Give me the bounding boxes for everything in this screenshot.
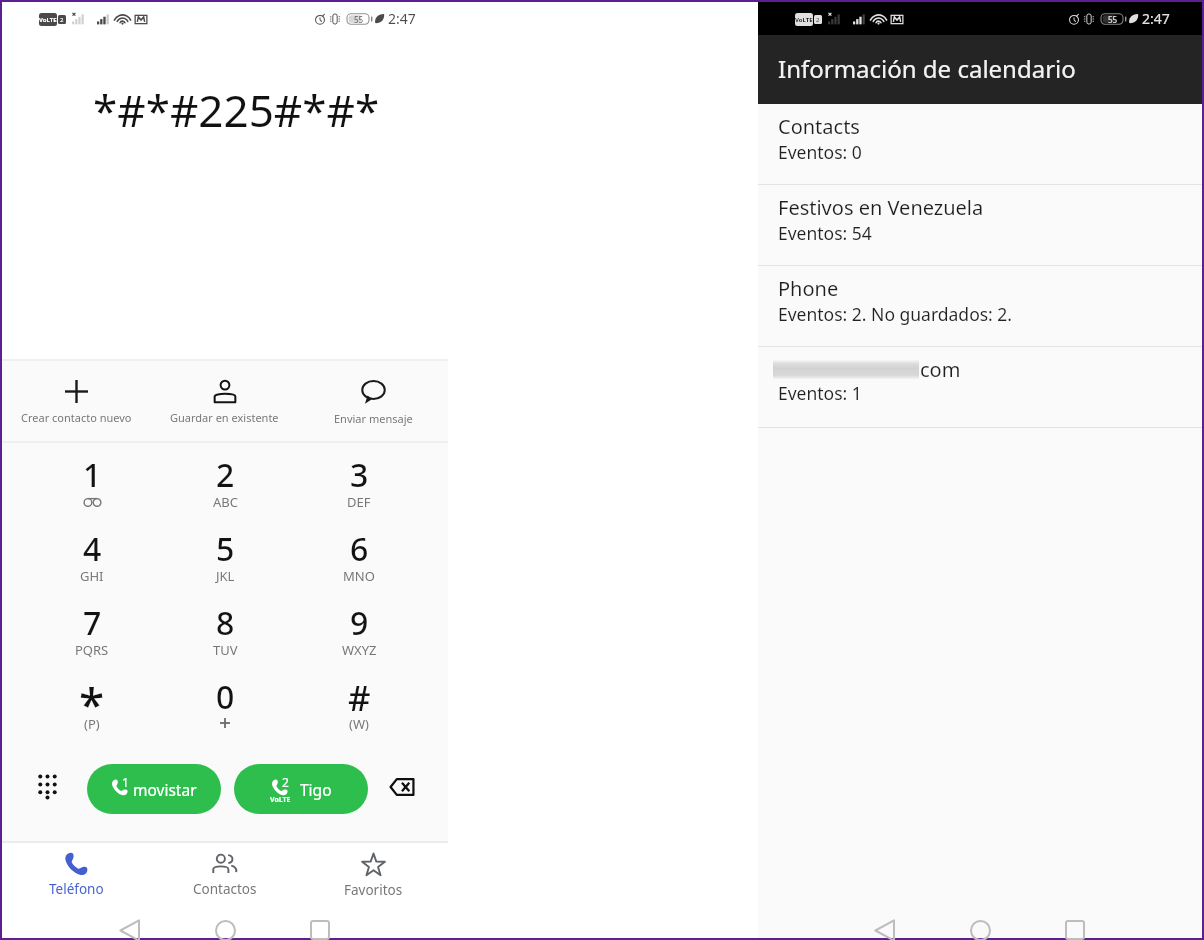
staticText: 1 — [83, 453, 102, 497]
staticText: 2 — [816, 16, 820, 24]
staticText: Información de calendario — [778, 52, 1076, 85]
button[interactable]: Recents — [1066, 921, 1084, 939]
button[interactable]: * — [36, 674, 148, 748]
button[interactable]: 3 — [303, 452, 415, 526]
staticText: * — [79, 672, 105, 730]
staticText: com — [920, 356, 961, 381]
staticText: (W) — [349, 715, 369, 733]
staticText: *#*#225#*#* — [93, 80, 380, 138]
staticText: 8 — [216, 601, 235, 645]
staticText: Crear contacto nuevo — [21, 410, 132, 425]
staticText: 2 — [216, 453, 235, 497]
staticText: VoLTE — [795, 16, 813, 24]
button[interactable]: 1 — [87, 764, 221, 814]
button[interactable]: Enviar mensaje — [299, 361, 448, 441]
staticText: GHI — [80, 567, 104, 585]
staticText: MNO — [343, 567, 375, 585]
button[interactable]: Keypad — [26, 766, 68, 808]
staticText: 55 — [1108, 14, 1118, 25]
staticText: 9 — [350, 601, 369, 645]
staticText: Enviar mensaje — [334, 411, 413, 426]
button[interactable]: Favoritos — [299, 843, 448, 907]
staticText: 2 — [60, 16, 64, 24]
button[interactable]: Contacts — [758, 104, 1202, 185]
staticText: 7 — [83, 601, 102, 645]
staticText: Eventos: 2. No guardados: 2. — [778, 302, 1013, 326]
staticText: ABC — [213, 493, 238, 511]
staticText: WXYZ — [342, 641, 377, 659]
staticText: Eventos: 1 — [778, 381, 862, 405]
button[interactable]: Home — [970, 920, 991, 940]
staticText: Phone — [778, 275, 839, 302]
button[interactable]: 5 — [169, 526, 281, 600]
button[interactable]: Guardar en existente — [150, 361, 299, 441]
button[interactable]: Backspace — [381, 766, 423, 808]
staticText: (P) — [84, 715, 100, 733]
button[interactable]: 2 — [169, 452, 281, 526]
staticText: 4 — [83, 527, 102, 571]
staticText: movistar — [133, 779, 197, 800]
button[interactable]: 6 — [303, 526, 415, 600]
staticText: 2:47 — [388, 9, 416, 28]
button[interactable]: Contactos — [150, 843, 299, 907]
staticText: TUV — [213, 641, 238, 659]
staticText: Eventos: 0 — [778, 140, 862, 164]
staticText: Tigo — [300, 779, 332, 800]
button[interactable]: Back — [120, 920, 140, 940]
button[interactable]: Festivos en Venezuela — [758, 185, 1202, 266]
button[interactable]: Back — [875, 920, 895, 940]
staticText: # — [348, 674, 371, 720]
staticText: 5 — [216, 527, 235, 571]
staticText: 2:47 — [1142, 9, 1170, 28]
staticText: 1 — [122, 774, 129, 790]
button[interactable]: 2 — [234, 764, 368, 814]
button[interactable]: # — [303, 674, 415, 748]
staticText: 0 — [216, 675, 235, 719]
staticText: Favoritos — [344, 881, 403, 899]
staticText: Eventos: 54 — [778, 221, 872, 245]
button[interactable]: 0 — [169, 674, 281, 748]
staticText: Guardar en existente — [170, 410, 279, 425]
staticText: Contactos — [193, 880, 257, 898]
button[interactable]: com — [758, 347, 1202, 428]
staticText: Contacts — [778, 113, 860, 140]
staticText: 55 — [354, 14, 364, 25]
button[interactable]: Phone — [758, 266, 1202, 347]
button[interactable]: Crear contacto nuevo — [2, 361, 150, 441]
button[interactable]: Recents — [311, 921, 329, 939]
staticText: 2 — [282, 774, 289, 790]
staticText: VoLTE — [39, 16, 57, 24]
button[interactable]: 4 — [36, 526, 148, 600]
button[interactable]: 1 — [36, 452, 148, 526]
button[interactable]: 9 — [303, 600, 415, 674]
button[interactable]: Teléfono — [2, 843, 150, 907]
staticText: PQRS — [75, 641, 109, 659]
staticText: 3 — [350, 453, 369, 497]
staticText: 6 — [350, 527, 369, 571]
button[interactable]: 8 — [169, 600, 281, 674]
staticText: DEF — [347, 493, 371, 511]
button[interactable]: 7 — [36, 600, 148, 674]
staticText: Festivos en Venezuela — [778, 194, 984, 221]
staticText: VoLTE — [270, 795, 291, 805]
staticText: Teléfono — [49, 880, 104, 898]
button[interactable]: Home — [215, 920, 236, 940]
staticText: JKL — [216, 567, 235, 585]
